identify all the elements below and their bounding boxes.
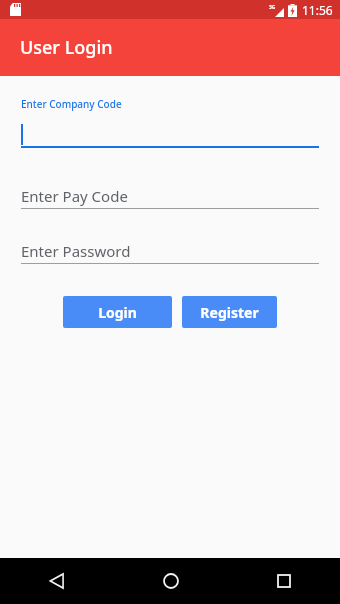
button[interactable]: Enter Pay Code — [21, 184, 319, 209]
staticText: User Login — [20, 35, 113, 60]
button[interactable]: Enter Password — [21, 239, 319, 264]
staticText: 11:56 — [302, 2, 333, 18]
staticText: 3G — [269, 4, 276, 11]
button[interactable]: Login — [63, 296, 172, 328]
button[interactable]: Home — [114, 558, 227, 604]
staticText: Enter Company Code — [21, 97, 122, 111]
button[interactable]: Back — [0, 558, 114, 604]
staticText: Enter Pay Code — [21, 186, 128, 206]
staticText: Enter Password — [21, 241, 131, 261]
staticText: Register — [200, 303, 259, 322]
staticText: Login — [98, 303, 137, 322]
button[interactable]: Register — [182, 296, 277, 328]
button[interactable]: Recent apps — [227, 558, 340, 604]
button[interactable]: Enter Company Code — [21, 97, 319, 148]
